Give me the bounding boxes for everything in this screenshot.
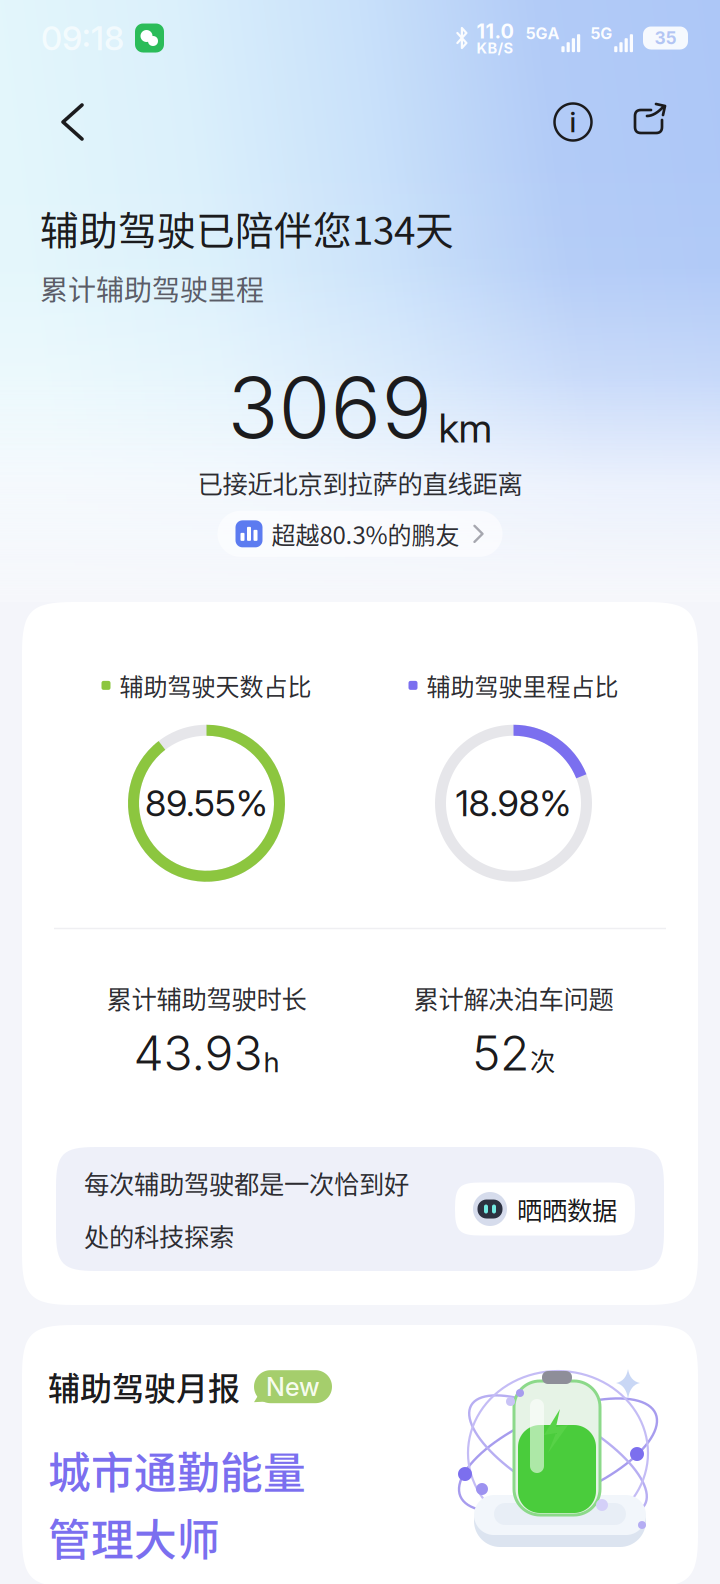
staticText: New xyxy=(266,1371,320,1402)
staticText: 5GA xyxy=(525,24,559,43)
button[interactable]: 分享 xyxy=(627,98,671,146)
staticText: 次 xyxy=(530,1041,555,1078)
staticText: 城市通勤能量 xyxy=(48,1439,306,1501)
staticText: 累计解决泊车问题 xyxy=(413,979,613,1016)
staticText: 累计辅助驾驶时长 xyxy=(106,979,306,1016)
button[interactable]: 返回 xyxy=(41,98,103,146)
staticText: i xyxy=(569,105,576,139)
staticText: 11.0 xyxy=(476,19,513,43)
staticText: h xyxy=(263,1045,279,1079)
staticText: 52 xyxy=(472,1024,529,1082)
staticText: 5G xyxy=(590,24,612,43)
staticText: km xyxy=(438,404,492,452)
staticText: 辅助驾驶月报 xyxy=(48,1363,240,1409)
staticText: 43.93 xyxy=(133,1024,262,1082)
staticText: 已接近北京到拉萨的直线距离 xyxy=(197,464,522,501)
staticText: 3069 xyxy=(227,356,432,458)
staticText: 辅助驾驶里程占比 xyxy=(426,668,618,703)
staticText: 累计辅助驾驶里程 xyxy=(40,268,264,308)
staticText: 超越80.3%的鹏友 xyxy=(271,516,459,551)
staticText: 管理大师 xyxy=(48,1506,220,1568)
staticText: 89.55% xyxy=(145,781,268,825)
staticText: 辅助驾驶已陪伴您134天 xyxy=(40,200,454,256)
staticText: 晒晒数据 xyxy=(517,1191,617,1227)
button[interactable]: 说明 xyxy=(551,98,595,146)
staticText: KB/S xyxy=(476,39,513,57)
staticText: 辅助驾驶天数占比 xyxy=(119,668,311,703)
staticText: 09:18 xyxy=(41,18,124,58)
staticText: 处的科技探索 xyxy=(84,1217,234,1254)
button[interactable]: 晒晒数据 xyxy=(455,1182,635,1235)
staticText: 每次辅助驾驶都是一次恰到好 xyxy=(84,1164,409,1201)
staticText: 18.98% xyxy=(455,781,571,825)
staticText: 35 xyxy=(654,27,676,48)
button[interactable]: 超越80.3%的鹏友 xyxy=(217,511,502,557)
